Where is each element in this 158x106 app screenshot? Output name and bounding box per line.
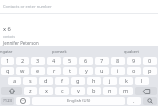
staticText: ngatar: [0, 49, 13, 54]
staticText: Contacts or enter number: [3, 4, 52, 9]
button[interactable]: pomark: [13, 46, 105, 56]
staticText: i: [117, 67, 119, 75]
button[interactable]: 1: [1, 57, 14, 65]
button[interactable]: t: [63, 67, 77, 75]
button[interactable]: .: [127, 97, 141, 105]
staticText: w: [20, 67, 25, 75]
button[interactable]: x: [39, 87, 53, 95]
staticText: d: [44, 77, 48, 85]
button[interactable]: k: [119, 77, 133, 85]
button[interactable]: e: [31, 67, 45, 75]
staticText: 6: [84, 57, 88, 65]
button[interactable]: r: [47, 67, 61, 75]
button[interactable]: ngatar: [0, 46, 13, 56]
button[interactable]: g: [71, 77, 85, 85]
staticText: r: [53, 67, 56, 75]
button[interactable]: f: [55, 77, 69, 85]
staticText: x: [45, 87, 48, 95]
staticText: quabert: [124, 49, 139, 54]
button[interactable]: h: [87, 77, 101, 85]
staticText: 1: [6, 57, 10, 65]
staticText: m: [123, 87, 129, 95]
staticText: u: [100, 67, 104, 75]
button[interactable]: d: [39, 77, 53, 85]
staticText: c: [61, 87, 64, 95]
button[interactable]: Search: [143, 97, 157, 105]
staticText: k: [125, 77, 128, 85]
button[interactable]: English (US): [32, 97, 125, 105]
button[interactable]: b: [87, 87, 101, 95]
staticText: a: [13, 77, 17, 85]
button[interactable]: 8: [111, 57, 125, 65]
staticText: l: [141, 77, 143, 85]
button[interactable]: w: [16, 67, 29, 75]
button[interactable]: z: [24, 87, 37, 95]
staticText: ?123: [3, 98, 13, 104]
staticText: q: [6, 67, 10, 75]
staticText: f: [61, 77, 63, 85]
button[interactable]: 4: [47, 57, 61, 65]
button[interactable]: ?123: [1, 97, 14, 105]
button[interactable]: n: [103, 87, 117, 95]
staticText: y: [85, 67, 88, 75]
staticText: 5: [68, 57, 72, 65]
staticText: b: [92, 87, 96, 95]
button[interactable]: i: [111, 67, 125, 75]
button[interactable]: 0: [143, 57, 157, 65]
staticText: 2: [21, 57, 25, 65]
button[interactable]: y: [79, 67, 93, 75]
staticText: o: [132, 67, 136, 75]
staticText: .: [133, 97, 135, 105]
staticText: j: [109, 77, 111, 85]
staticText: v: [77, 87, 80, 95]
button[interactable]: q: [1, 67, 14, 75]
button[interactable]: m: [119, 87, 133, 95]
staticText: z: [29, 87, 32, 95]
staticText: English (US): [67, 98, 91, 104]
button[interactable]: s: [23, 77, 37, 85]
button[interactable]: Contacts or enter number: [0, 0, 158, 13]
button[interactable]: 5: [63, 57, 77, 65]
button[interactable]: p: [143, 67, 157, 75]
staticText: g: [76, 77, 80, 85]
button[interactable]: quabert: [105, 46, 158, 56]
staticText: contacts: [3, 35, 15, 39]
staticText: Jennifer Peterson: [3, 40, 39, 46]
staticText: t: [69, 67, 72, 75]
staticText: 9: [132, 57, 136, 65]
staticText: 3: [36, 57, 40, 65]
staticText: p: [148, 67, 152, 75]
staticText: 7: [100, 57, 104, 65]
staticText: 8: [116, 57, 120, 65]
staticText: x 6: [3, 25, 11, 33]
button[interactable]: Emoji: [16, 97, 30, 105]
button[interactable]: Backspace: [135, 87, 157, 95]
button[interactable]: u: [95, 67, 109, 75]
staticText: h: [92, 77, 96, 85]
button[interactable]: 3: [31, 57, 45, 65]
staticText: e: [36, 67, 40, 75]
button[interactable]: j: [103, 77, 117, 85]
button[interactable]: a: [8, 77, 21, 85]
button[interactable]: v: [71, 87, 85, 95]
button[interactable]: 6: [79, 57, 93, 65]
button[interactable]: Shift: [1, 87, 22, 95]
staticText: 0: [148, 57, 152, 65]
staticText: 4: [52, 57, 56, 65]
staticText: pomark: [52, 49, 67, 54]
button[interactable]: o: [127, 67, 141, 75]
staticText: n: [108, 87, 112, 95]
button[interactable]: 9: [127, 57, 141, 65]
staticText: s: [29, 77, 32, 85]
button[interactable]: l: [135, 77, 149, 85]
button[interactable]: 7: [95, 57, 109, 65]
button[interactable]: c: [55, 87, 69, 95]
button[interactable]: 2: [16, 57, 29, 65]
